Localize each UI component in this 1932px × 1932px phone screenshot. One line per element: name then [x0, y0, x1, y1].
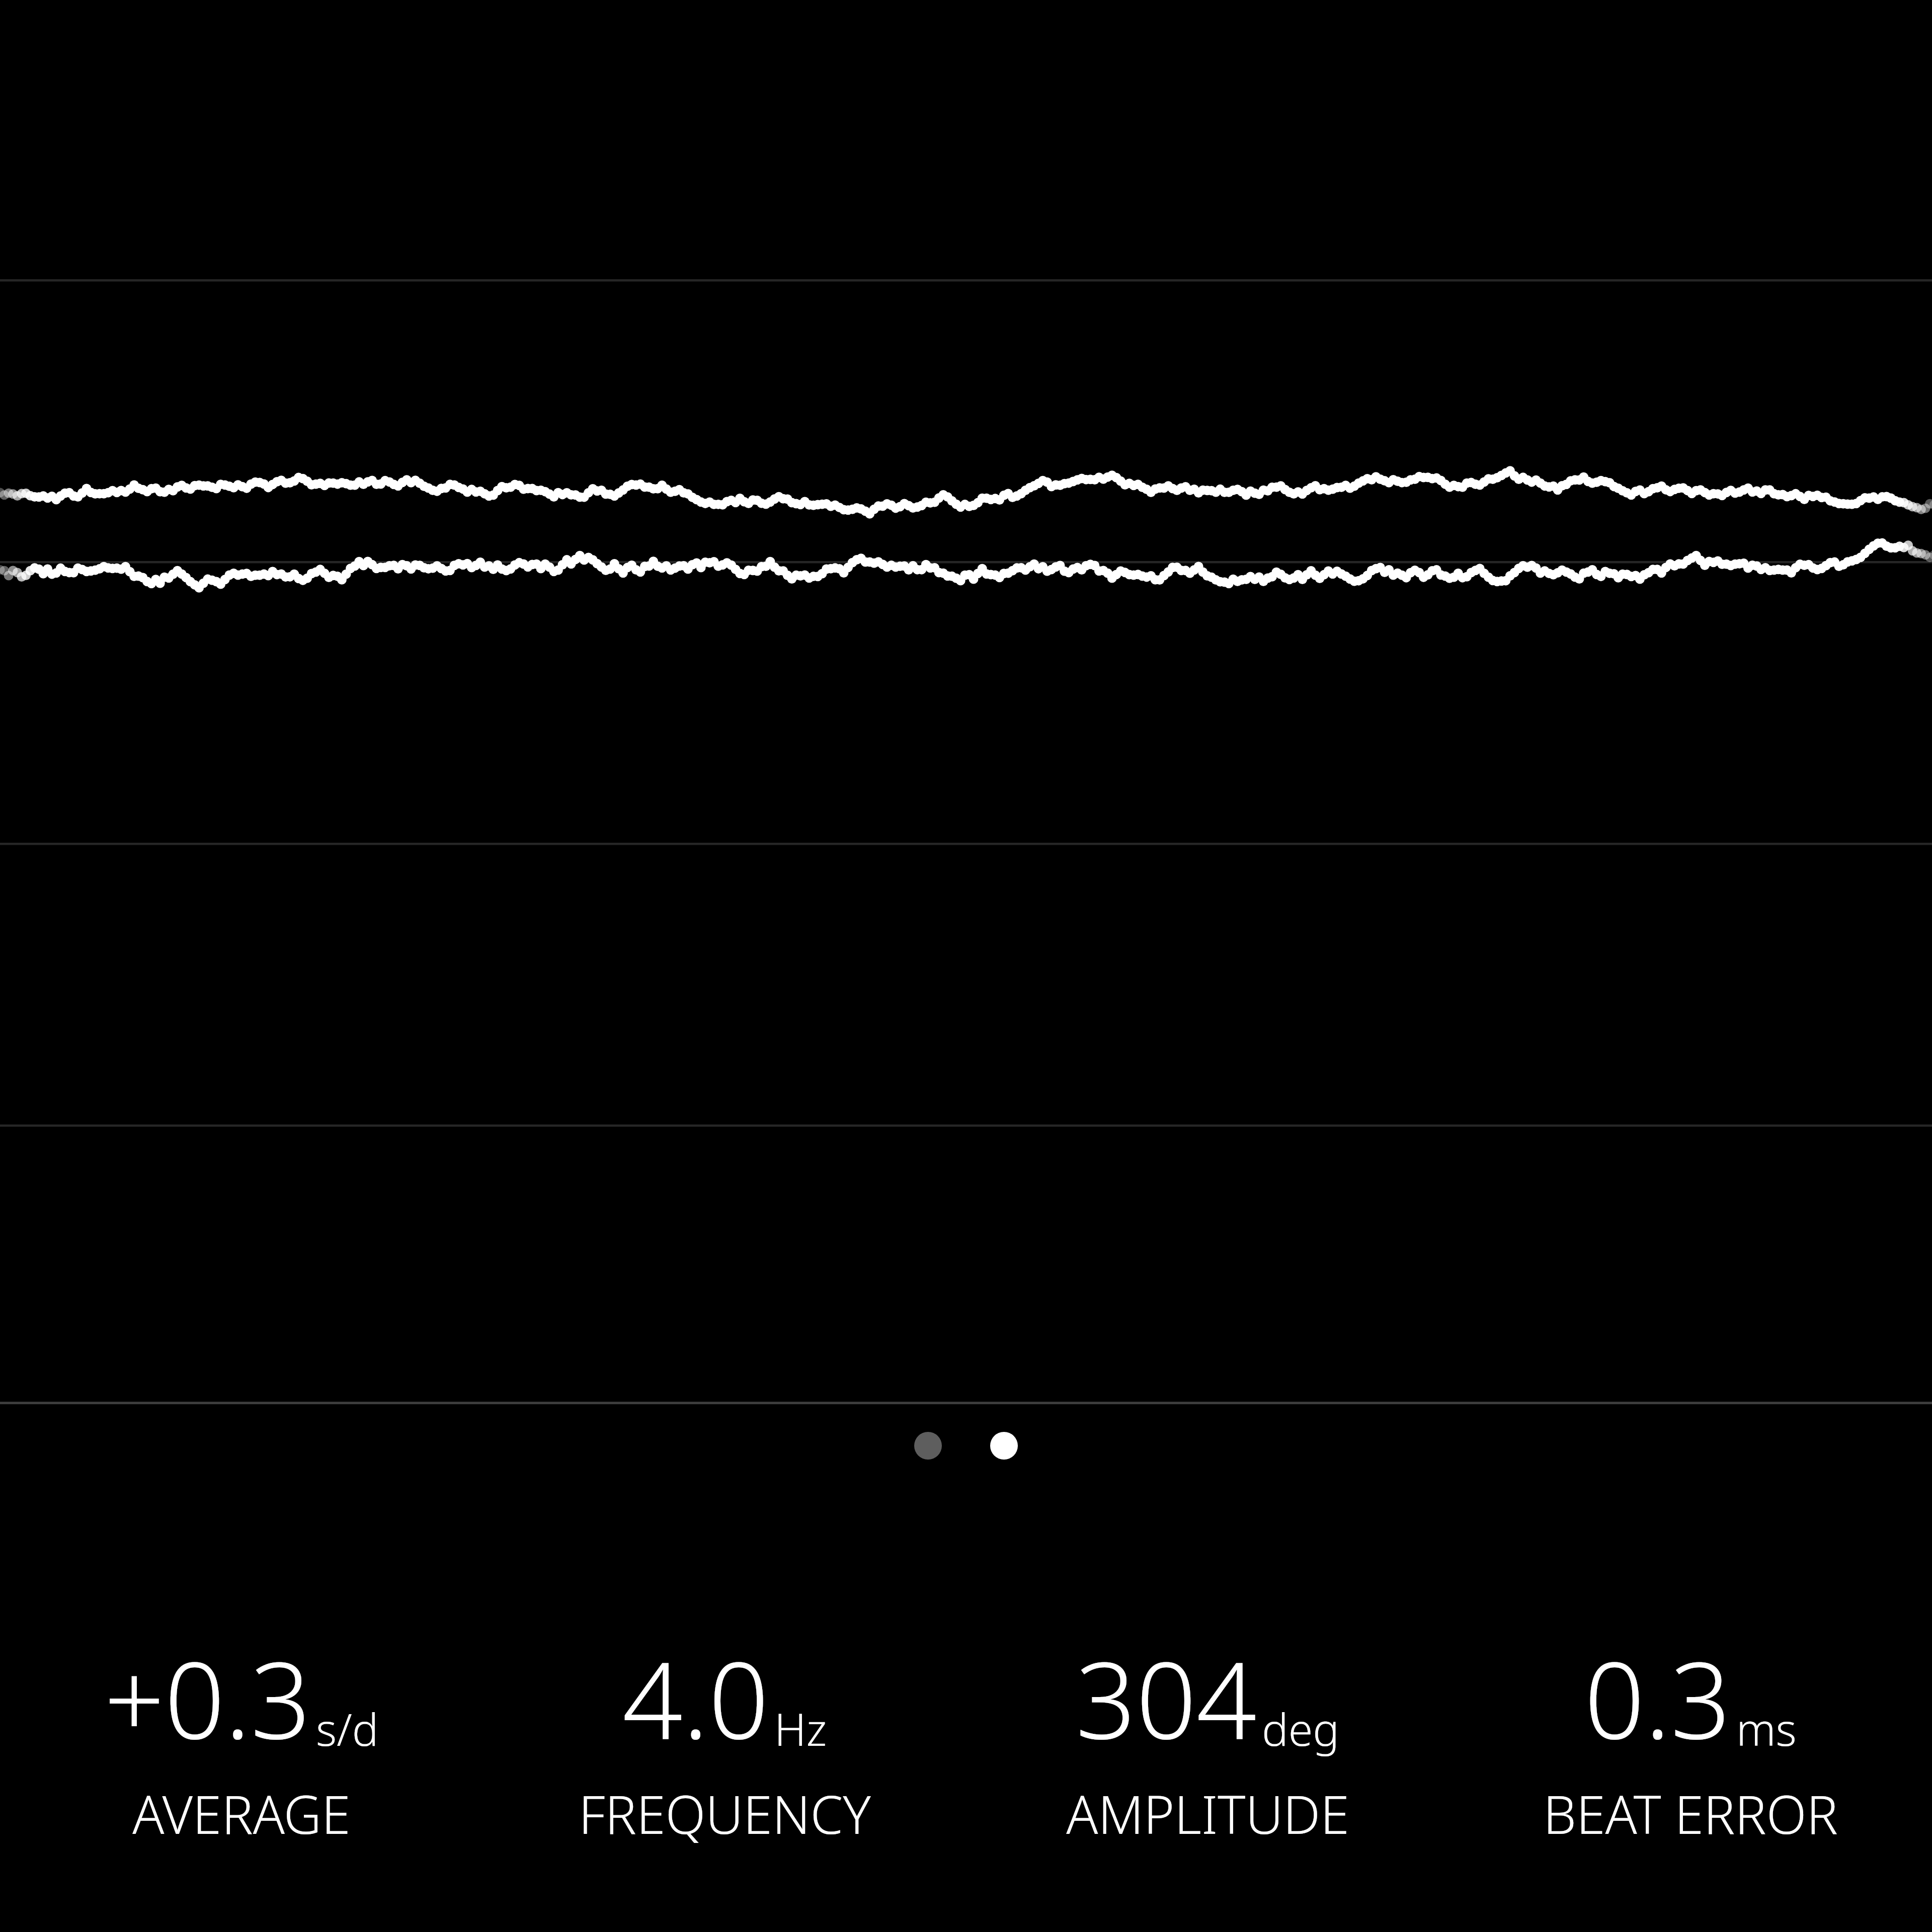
staticText: AVERAGE	[132, 1778, 351, 1849]
staticText: AMPLITUDE	[1066, 1778, 1349, 1849]
button[interactable]: 4.0	[483, 1626, 966, 1849]
staticText: Hz	[774, 1699, 827, 1759]
staticText: deg	[1262, 1699, 1340, 1759]
staticText: 304	[1076, 1626, 1257, 1770]
staticText: BEAT ERROR	[1543, 1778, 1838, 1849]
staticText: 4.0	[622, 1626, 769, 1770]
staticText: ms	[1736, 1699, 1797, 1759]
button[interactable]: 0.3	[1449, 1626, 1932, 1849]
staticText: 0.3	[1584, 1626, 1731, 1770]
button[interactable]: Page 2	[990, 1432, 1018, 1460]
staticText: +0.3	[104, 1626, 311, 1770]
button[interactable]: Page 1	[914, 1432, 942, 1460]
staticText: FREQUENCY	[579, 1778, 871, 1849]
button[interactable]: 304	[966, 1626, 1449, 1849]
staticText: s/d	[316, 1699, 379, 1759]
button[interactable]: +0.3	[0, 1626, 483, 1849]
